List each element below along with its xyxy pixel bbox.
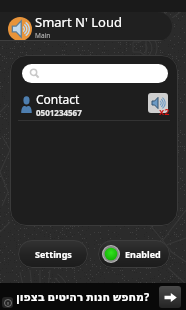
staticText: Settings: [35, 248, 72, 260]
staticText: Contact: [36, 91, 80, 107]
button[interactable]: מחפש חנות רהיטים בצפון?: [0, 283, 186, 310]
staticText: Main: [35, 31, 51, 40]
staticText: מחפש חנות רהיטים בצפון?: [16, 289, 150, 304]
button[interactable]: Smart N' Loud: [0, 12, 172, 41]
staticText: Enabled: [125, 248, 161, 260]
button[interactable]: Open ad: [159, 286, 181, 308]
staticText: x2: [159, 105, 170, 117]
button[interactable]: [22, 64, 168, 83]
staticText: 0501234567: [36, 107, 82, 118]
button[interactable]: Volume x2: [148, 93, 170, 115]
button[interactable]: Enabled: [98, 240, 170, 268]
button[interactable]: Settings: [18, 240, 88, 268]
button[interactable]: Contact: [10, 88, 178, 120]
staticText: Smart N' Loud: [35, 13, 122, 31]
